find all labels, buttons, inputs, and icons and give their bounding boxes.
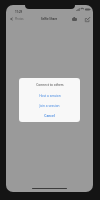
staticText: Connect to others xyxy=(36,83,64,87)
staticText: Photos xyxy=(15,17,24,21)
button[interactable]: Cancel xyxy=(19,111,80,121)
button[interactable]: Host a session xyxy=(19,91,80,101)
button[interactable]: Join a session xyxy=(19,101,80,111)
button[interactable]: Camera xyxy=(70,15,78,23)
staticText: 11:29 xyxy=(15,10,23,14)
staticText: Cancel xyxy=(44,114,55,118)
staticText: Host a session xyxy=(39,94,61,98)
staticText: Join a session xyxy=(39,104,60,108)
button[interactable]: Back to Photos xyxy=(10,14,32,23)
button[interactable]: Compose xyxy=(83,15,91,23)
staticText: Selfie Share xyxy=(41,17,58,21)
